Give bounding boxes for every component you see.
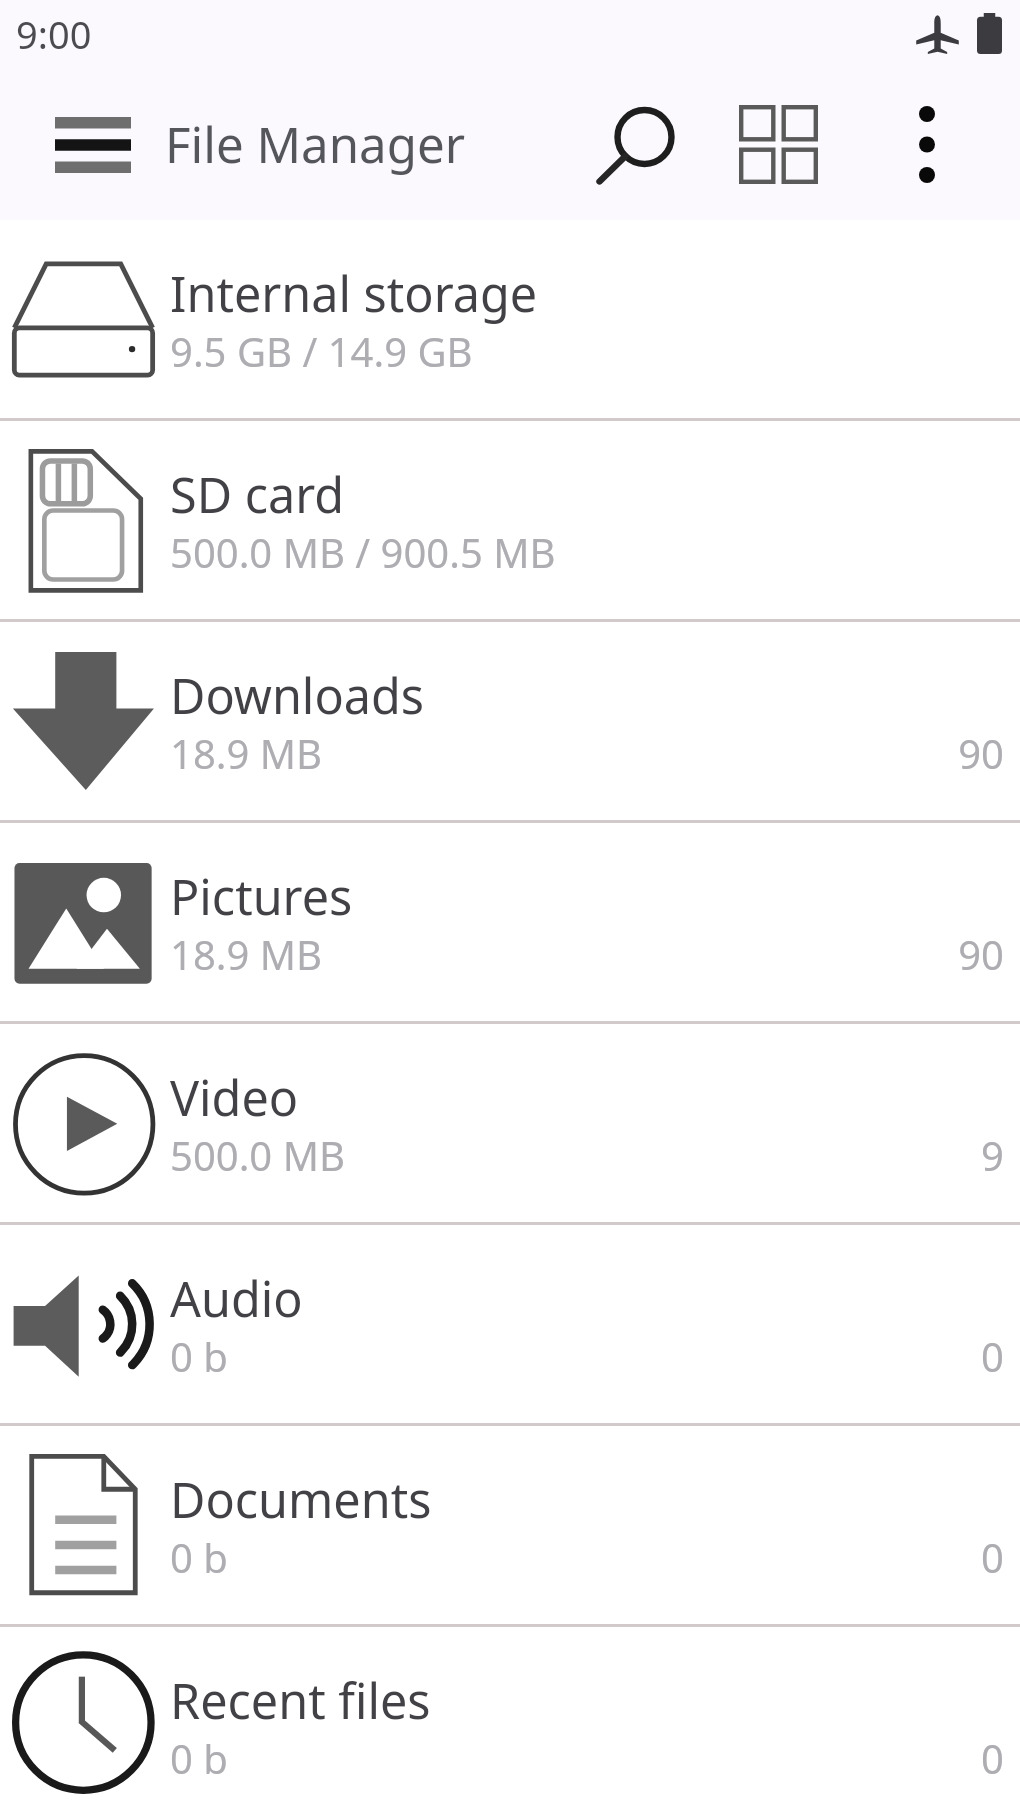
staticText: 0 b bbox=[170, 1530, 228, 1584]
staticText: Documents bbox=[170, 1466, 432, 1532]
staticText: 9:00 bbox=[16, 8, 92, 60]
button[interactable]: SD card bbox=[0, 421, 1020, 622]
staticText: Recent files bbox=[170, 1667, 431, 1733]
staticText: 90 bbox=[958, 726, 1004, 780]
button[interactable]: Internal storage bbox=[0, 220, 1020, 421]
staticText: 18.9 MB bbox=[170, 726, 323, 780]
staticText: Downloads bbox=[170, 662, 424, 728]
staticText: 0 bbox=[981, 1530, 1004, 1584]
staticText: 18.9 MB bbox=[170, 927, 323, 981]
button[interactable]: More options bbox=[868, 84, 986, 204]
staticText: 90 bbox=[958, 927, 1004, 981]
button[interactable]: Downloads bbox=[0, 622, 1020, 823]
staticText: Pictures bbox=[170, 863, 353, 929]
button[interactable]: Recent files bbox=[0, 1627, 1020, 1819]
staticText: 0 bbox=[981, 1731, 1004, 1785]
staticText: Internal storage bbox=[170, 260, 538, 326]
staticText: 0 b bbox=[170, 1731, 228, 1785]
staticText: 0 bbox=[981, 1329, 1004, 1383]
staticText: 0 b bbox=[170, 1329, 228, 1383]
staticText: SD card bbox=[170, 461, 345, 527]
staticText: 9.5 GB / 14.9 GB bbox=[170, 324, 473, 378]
button[interactable]: Pictures bbox=[0, 823, 1020, 1024]
staticText: 9 bbox=[981, 1128, 1004, 1182]
staticText: File Manager bbox=[165, 110, 465, 177]
staticText: Audio bbox=[170, 1265, 303, 1331]
button[interactable]: Grid view bbox=[718, 85, 838, 205]
staticText: Video bbox=[170, 1064, 299, 1130]
staticText: 500.0 MB / 900.5 MB bbox=[170, 525, 556, 579]
button[interactable]: Audio bbox=[0, 1225, 1020, 1426]
staticText: 500.0 MB bbox=[170, 1128, 345, 1182]
button[interactable]: Menu bbox=[22, 90, 164, 200]
button[interactable]: Search bbox=[574, 85, 694, 205]
button[interactable]: Documents bbox=[0, 1426, 1020, 1627]
button[interactable]: Video bbox=[0, 1024, 1020, 1225]
